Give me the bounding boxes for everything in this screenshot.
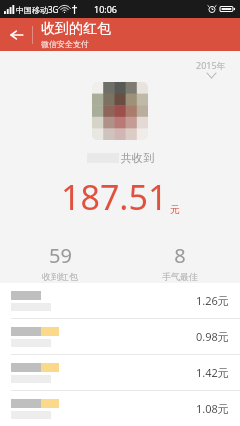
staticText: 1.26元 bbox=[196, 293, 229, 308]
staticText: 1.42元 bbox=[196, 365, 229, 380]
staticText: 收到红包 bbox=[42, 271, 78, 282]
button[interactable]: 1.42元 bbox=[0, 355, 240, 390]
button[interactable]: 8 bbox=[120, 242, 240, 282]
staticText: 59 bbox=[49, 242, 72, 269]
staticText: 8 bbox=[174, 242, 186, 269]
button[interactable]: 1.26元 bbox=[0, 283, 240, 318]
staticText: 1.08元 bbox=[196, 401, 229, 416]
staticText: 共收到 bbox=[121, 151, 154, 165]
staticText: 元 bbox=[170, 203, 180, 216]
staticText: 10:06 bbox=[94, 3, 118, 15]
button[interactable]: Back bbox=[0, 18, 34, 51]
staticText: 手气最佳 bbox=[162, 271, 198, 282]
button[interactable]: 2015年 bbox=[196, 59, 226, 78]
button[interactable]: 59 bbox=[0, 242, 120, 282]
staticText: 187.51 bbox=[61, 174, 168, 220]
staticText: 收到的红包 bbox=[41, 20, 111, 38]
staticText: 中国移动3G bbox=[16, 4, 59, 15]
button[interactable]: 1.08元 bbox=[0, 391, 240, 426]
button[interactable]: 0.98元 bbox=[0, 319, 240, 354]
staticText: 2015年 bbox=[196, 59, 226, 71]
staticText: 微信安全支付 bbox=[41, 39, 89, 49]
staticText: 0.98元 bbox=[196, 329, 229, 344]
